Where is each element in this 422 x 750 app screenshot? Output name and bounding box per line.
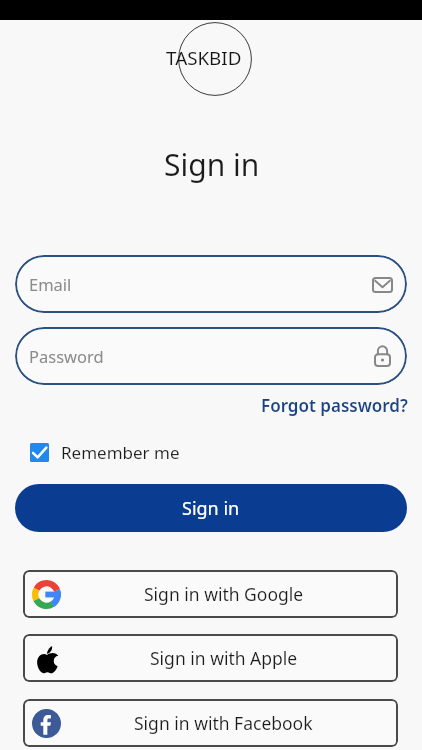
button[interactable]: Email [15,255,407,313]
staticText: Sign in with Google [144,582,304,606]
button[interactable]: Sign in with Google [23,570,398,618]
staticText: Sign in [164,144,260,185]
button[interactable]: Sign in [15,484,407,532]
button[interactable]: Password [15,327,407,385]
staticText: Forgot password? [261,394,408,417]
staticText: Remember me [61,441,180,464]
button[interactable]: Remember me [30,441,180,464]
staticText: Sign in [182,496,240,521]
other: Email [372,277,393,293]
button[interactable]: Sign in with Apple [23,634,398,682]
other: Password [374,345,391,367]
staticText: TASKBID [166,45,242,71]
staticText: Sign in with Facebook [134,711,313,735]
staticText: Sign in with Apple [150,646,298,670]
staticText: Email [29,273,72,295]
button[interactable]: Sign in with Facebook [23,699,398,747]
staticText: Password [29,345,104,367]
button[interactable]: Forgot password? [259,392,410,419]
